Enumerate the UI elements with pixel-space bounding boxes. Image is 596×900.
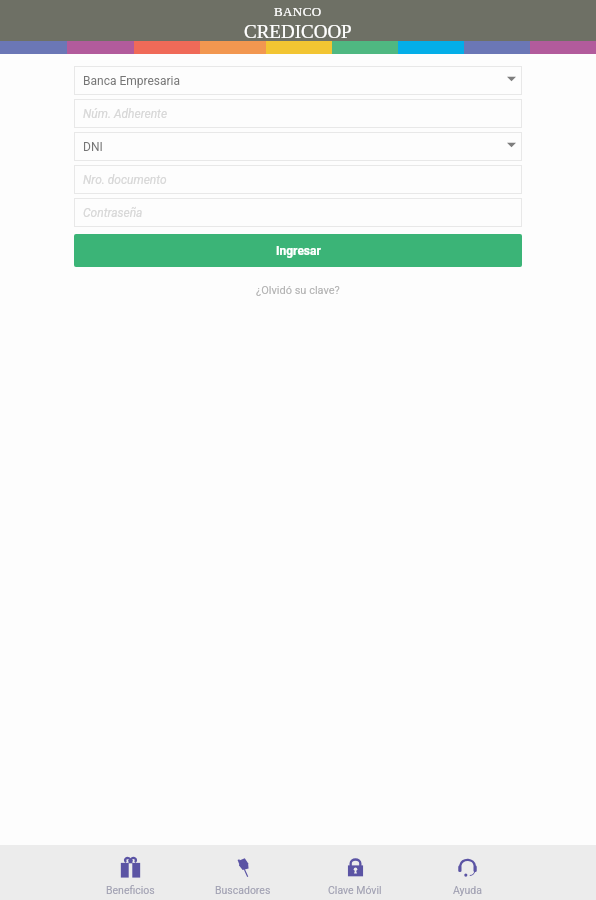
- staticText: Banca Empresaria: [83, 74, 181, 88]
- staticText: Buscadores: [215, 884, 271, 896]
- button[interactable]: Buscadores: [187, 845, 299, 900]
- staticText: Ayuda: [453, 884, 482, 896]
- button[interactable]: Ayuda: [411, 845, 523, 900]
- staticText: BANCO: [274, 4, 322, 18]
- button[interactable]: Contraseña: [74, 198, 522, 227]
- button[interactable]: ¿Olvidó su clave?: [256, 284, 340, 297]
- staticText: Ingresar: [276, 244, 321, 258]
- staticText: Clave Móvil: [328, 884, 382, 896]
- button[interactable]: Núm. Adherente: [74, 99, 522, 128]
- button[interactable]: Beneficios: [74, 845, 187, 900]
- staticText: CREDICOOP: [244, 21, 352, 41]
- button[interactable]: DNI: [74, 132, 522, 161]
- button[interactable]: Banca Empresaria: [74, 66, 522, 95]
- staticText: Contraseña: [83, 206, 143, 220]
- staticText: Nro. documento: [83, 173, 167, 187]
- button[interactable]: Nro. documento: [74, 165, 522, 194]
- staticText: Núm. Adherente: [83, 107, 168, 121]
- button[interactable]: Clave Movil: [299, 845, 411, 900]
- staticText: DNI: [83, 140, 103, 154]
- staticText: Beneficios: [106, 884, 155, 896]
- button[interactable]: Ingresar: [74, 234, 522, 267]
